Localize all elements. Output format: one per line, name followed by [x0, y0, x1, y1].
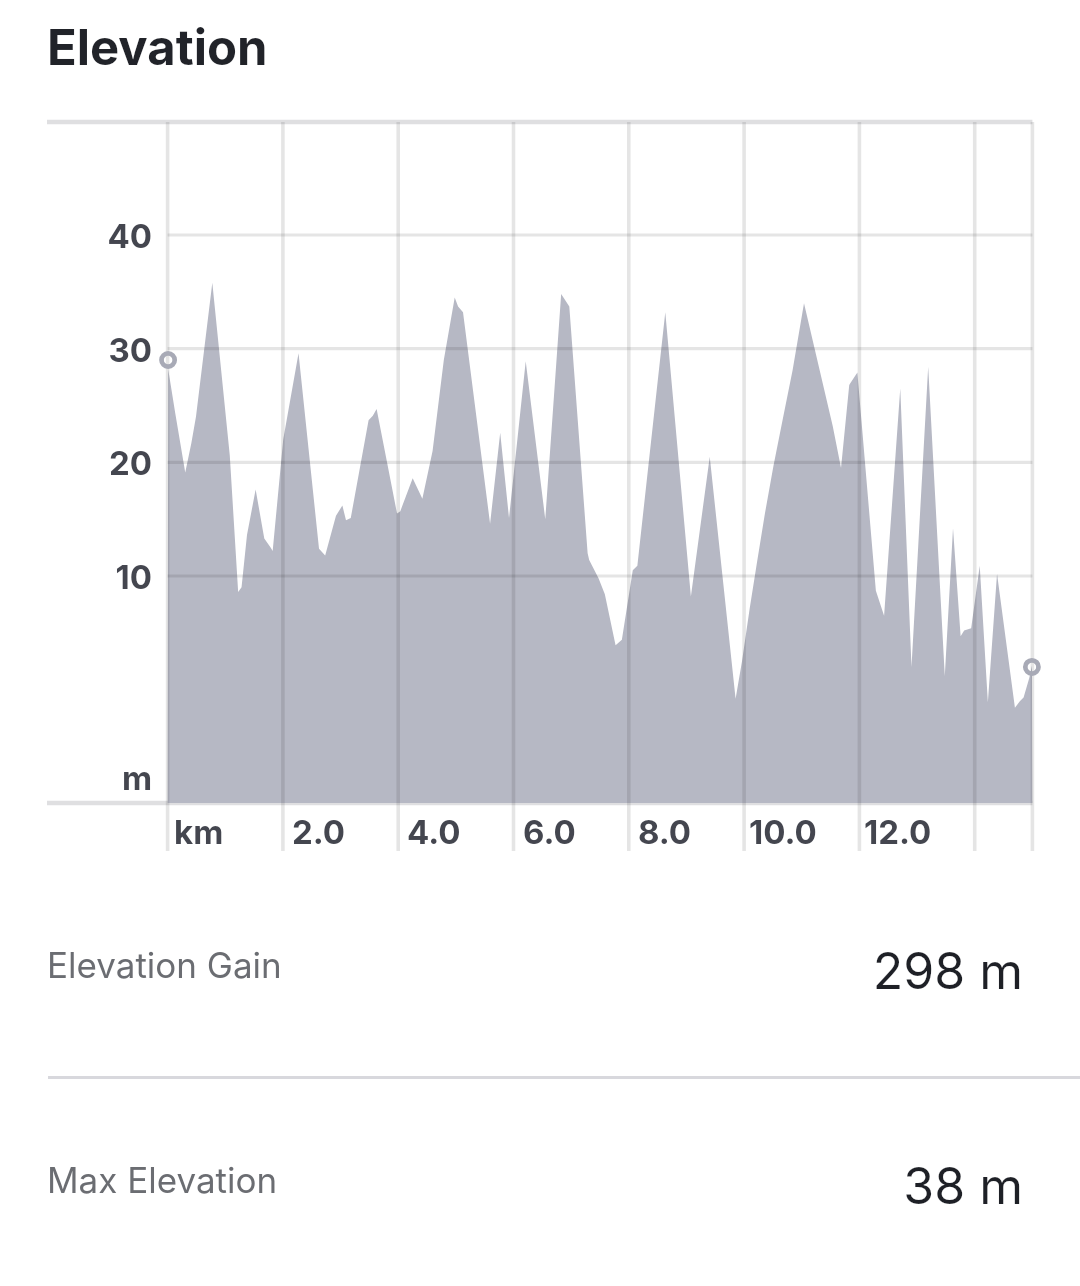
staticText: 10.0: [749, 812, 817, 852]
staticText: 20: [12, 443, 152, 483]
staticText: Max Elevation: [47, 1159, 278, 1201]
staticText: 40: [12, 216, 152, 256]
staticText: 38 m: [0, 1156, 1023, 1216]
staticText: 30: [12, 330, 152, 370]
staticText: 6.0: [523, 812, 576, 852]
staticText: 12.0: [864, 812, 932, 852]
staticText: km: [174, 812, 224, 852]
staticText: Elevation: [47, 18, 268, 77]
staticText: 10: [12, 557, 152, 597]
other: Elevation profile chart: [0, 0, 1080, 1286]
staticText: 2.0: [292, 812, 346, 852]
staticText: 4.0: [407, 812, 461, 852]
staticText: 8.0: [638, 812, 692, 852]
staticText: Elevation Gain: [47, 944, 282, 986]
staticText: m: [12, 758, 152, 798]
button[interactable]: Max Elevation: [0, 1112, 1080, 1252]
staticText: 298 m: [0, 941, 1023, 1001]
button[interactable]: Elevation Gain: [0, 897, 1080, 1037]
